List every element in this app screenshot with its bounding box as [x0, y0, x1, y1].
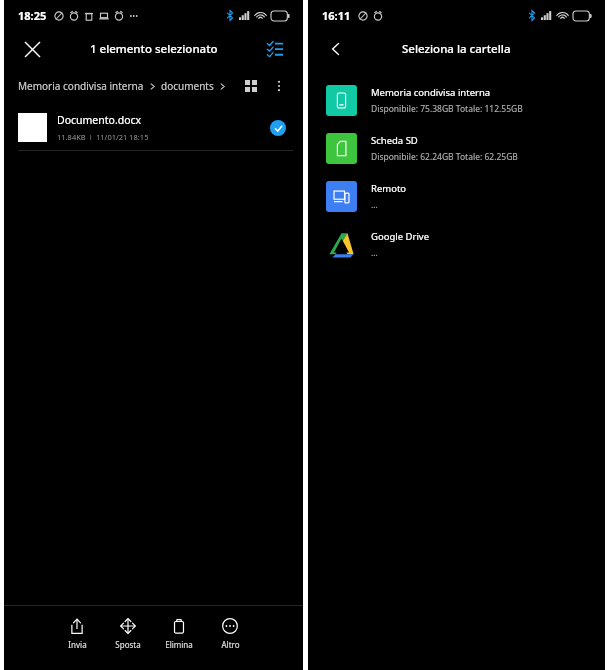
button[interactable]: Altro [205, 614, 255, 654]
staticText: Disponibile: 62.24GB Totale: 62.25GB [371, 151, 518, 163]
staticText: Memoria condivisa interna [18, 79, 144, 93]
button[interactable]: Seleziona tutto [259, 33, 291, 65]
button[interactable]: Memoria condivisa interna [308, 76, 605, 124]
button[interactable]: Invia [52, 614, 102, 654]
staticText: Remoto [371, 182, 407, 195]
button[interactable]: Elimina [154, 614, 204, 654]
staticText: Scheda SD [371, 134, 418, 147]
staticText: Google Drive [371, 230, 430, 243]
staticText: ... [371, 247, 378, 259]
staticText: Invia [68, 639, 87, 650]
staticText: Sposta [115, 639, 141, 650]
staticText: 16:11 [322, 8, 351, 23]
staticText: Altro [221, 639, 240, 650]
button[interactable]: Google Drive [308, 220, 605, 268]
button[interactable]: Altre opzioni [265, 72, 293, 100]
button[interactable]: Chiudi [16, 33, 48, 65]
button[interactable]: Memoria condivisa interna [18, 79, 226, 93]
staticText: Elimina [165, 639, 193, 650]
staticText: Memoria condivisa interna [371, 86, 491, 99]
button[interactable]: Sposta [103, 614, 153, 654]
button[interactable]: Indietro [320, 33, 352, 65]
button[interactable]: Vista griglia [237, 72, 265, 100]
staticText: 1 elemento selezionato [90, 41, 218, 57]
staticText: documents [161, 79, 214, 93]
button[interactable]: Remoto [308, 172, 605, 220]
staticText: Documento.docx [57, 113, 142, 127]
staticText: Disponibile: 75.38GB Totale: 112.55GB [371, 103, 523, 115]
staticText: 18:25 [18, 8, 47, 23]
button[interactable]: Documento.docx [4, 104, 303, 151]
staticText: ... [371, 199, 378, 211]
button[interactable]: Scheda SD [308, 124, 605, 172]
staticText: Seleziona la cartella [402, 41, 511, 57]
staticText: 11.84KB ǀ 11/01/21 18:15 [57, 132, 149, 142]
